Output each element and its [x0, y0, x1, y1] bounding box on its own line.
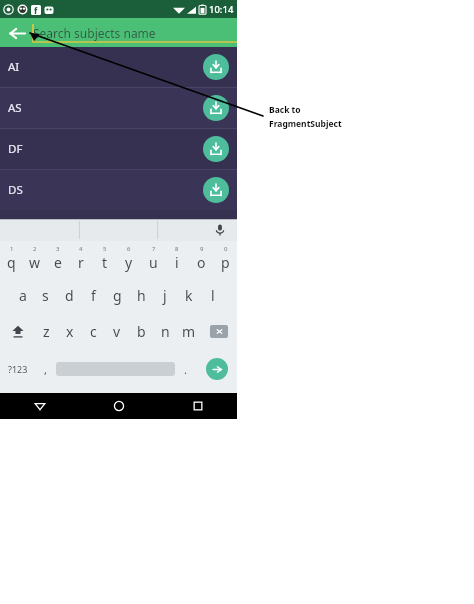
button[interactable]: d: [57, 277, 81, 313]
staticText: a: [19, 286, 27, 305]
button[interactable]: Download AI: [203, 54, 229, 80]
button[interactable]: DF: [0, 129, 237, 169]
button[interactable]: Home: [79, 393, 158, 419]
staticText: b: [137, 322, 146, 341]
staticText: q: [7, 253, 16, 272]
button[interactable]: AS: [0, 88, 237, 128]
staticText: ,: [44, 362, 47, 377]
button[interactable]: b: [129, 313, 153, 349]
button[interactable]: 4: [69, 241, 93, 277]
staticText: f: [91, 286, 96, 305]
staticText: 7: [152, 245, 156, 253]
staticText: 1: [10, 245, 14, 253]
button[interactable]: Voice input: [211, 221, 229, 239]
staticText: g: [113, 286, 122, 305]
staticText: s: [42, 286, 49, 305]
staticText: 5: [103, 245, 107, 253]
button[interactable]: Backspace: [201, 313, 237, 349]
button[interactable]: 6: [117, 241, 141, 277]
staticText: 10:14: [209, 3, 234, 16]
button[interactable]: DS: [0, 170, 237, 210]
button[interactable]: Download DS: [203, 177, 229, 203]
staticText: o: [197, 253, 206, 272]
button[interactable]: .: [175, 349, 196, 389]
button[interactable]: 9: [189, 241, 213, 277]
staticText: j: [163, 286, 167, 305]
staticText: f: [34, 5, 38, 15]
staticText: AI: [8, 59, 20, 75]
button[interactable]: 0: [213, 241, 237, 277]
staticText: FragmentSubject: [269, 118, 342, 130]
button[interactable]: 2: [23, 241, 46, 277]
staticText: m: [182, 322, 196, 341]
button[interactable]: x: [58, 313, 81, 349]
button[interactable]: 8: [165, 241, 189, 277]
staticText: l: [211, 286, 215, 305]
button[interactable]: f: [81, 277, 105, 313]
button[interactable]: g: [105, 277, 129, 313]
staticText: DS: [8, 182, 23, 198]
button[interactable]: k: [177, 277, 201, 313]
button[interactable]: ?123: [0, 349, 35, 389]
staticText: p: [221, 253, 230, 272]
button[interactable]: z: [35, 313, 58, 349]
staticText: h: [137, 286, 146, 305]
button[interactable]: Space: [56, 349, 175, 389]
button[interactable]: Download DF: [203, 136, 229, 162]
button[interactable]: Shift: [0, 313, 35, 349]
staticText: Back to: [269, 104, 301, 116]
staticText: d: [65, 286, 74, 305]
staticText: 8: [175, 245, 179, 253]
staticText: e: [54, 253, 62, 272]
staticText: 9: [200, 245, 204, 253]
button[interactable]: 3: [46, 241, 69, 277]
button[interactable]: Back: [5, 21, 29, 45]
staticText: 2: [33, 245, 37, 253]
button[interactable]: n: [153, 313, 177, 349]
button[interactable]: h: [129, 277, 153, 313]
staticText: v: [113, 322, 121, 341]
staticText: 0: [224, 245, 228, 253]
staticText: .: [184, 362, 187, 377]
button[interactable]: Recents: [158, 393, 237, 419]
staticText: ?123: [8, 363, 28, 375]
staticText: k: [185, 286, 193, 305]
button[interactable]: 5: [93, 241, 117, 277]
staticText: r: [78, 253, 84, 272]
staticText: w: [29, 253, 41, 272]
button[interactable]: 1: [0, 241, 23, 277]
button[interactable]: v: [105, 313, 129, 349]
staticText: 6: [127, 245, 131, 253]
button[interactable]: Back: [0, 393, 79, 419]
button[interactable]: m: [177, 313, 201, 349]
staticText: n: [161, 322, 170, 341]
staticText: Search subjects name: [33, 25, 156, 41]
staticText: DF: [8, 141, 23, 157]
staticText: u: [149, 253, 158, 272]
staticText: 4: [79, 245, 83, 253]
button[interactable]: ,: [35, 349, 56, 389]
button[interactable]: 7: [141, 241, 165, 277]
button[interactable]: j: [153, 277, 177, 313]
staticText: x: [66, 322, 74, 341]
button[interactable]: l: [201, 277, 225, 313]
staticText: z: [43, 322, 50, 341]
staticText: t: [102, 253, 108, 272]
staticText: 3: [56, 245, 60, 253]
button[interactable]: Enter: [196, 349, 237, 389]
button[interactable]: c: [81, 313, 105, 349]
staticText: y: [125, 253, 133, 272]
staticText: AS: [8, 100, 22, 116]
button[interactable]: AI: [0, 47, 237, 87]
staticText: c: [90, 322, 97, 341]
button[interactable]: s: [34, 277, 57, 313]
button[interactable]: Download AS: [203, 95, 229, 121]
button[interactable]: a: [11, 277, 34, 313]
staticText: i: [175, 253, 179, 272]
